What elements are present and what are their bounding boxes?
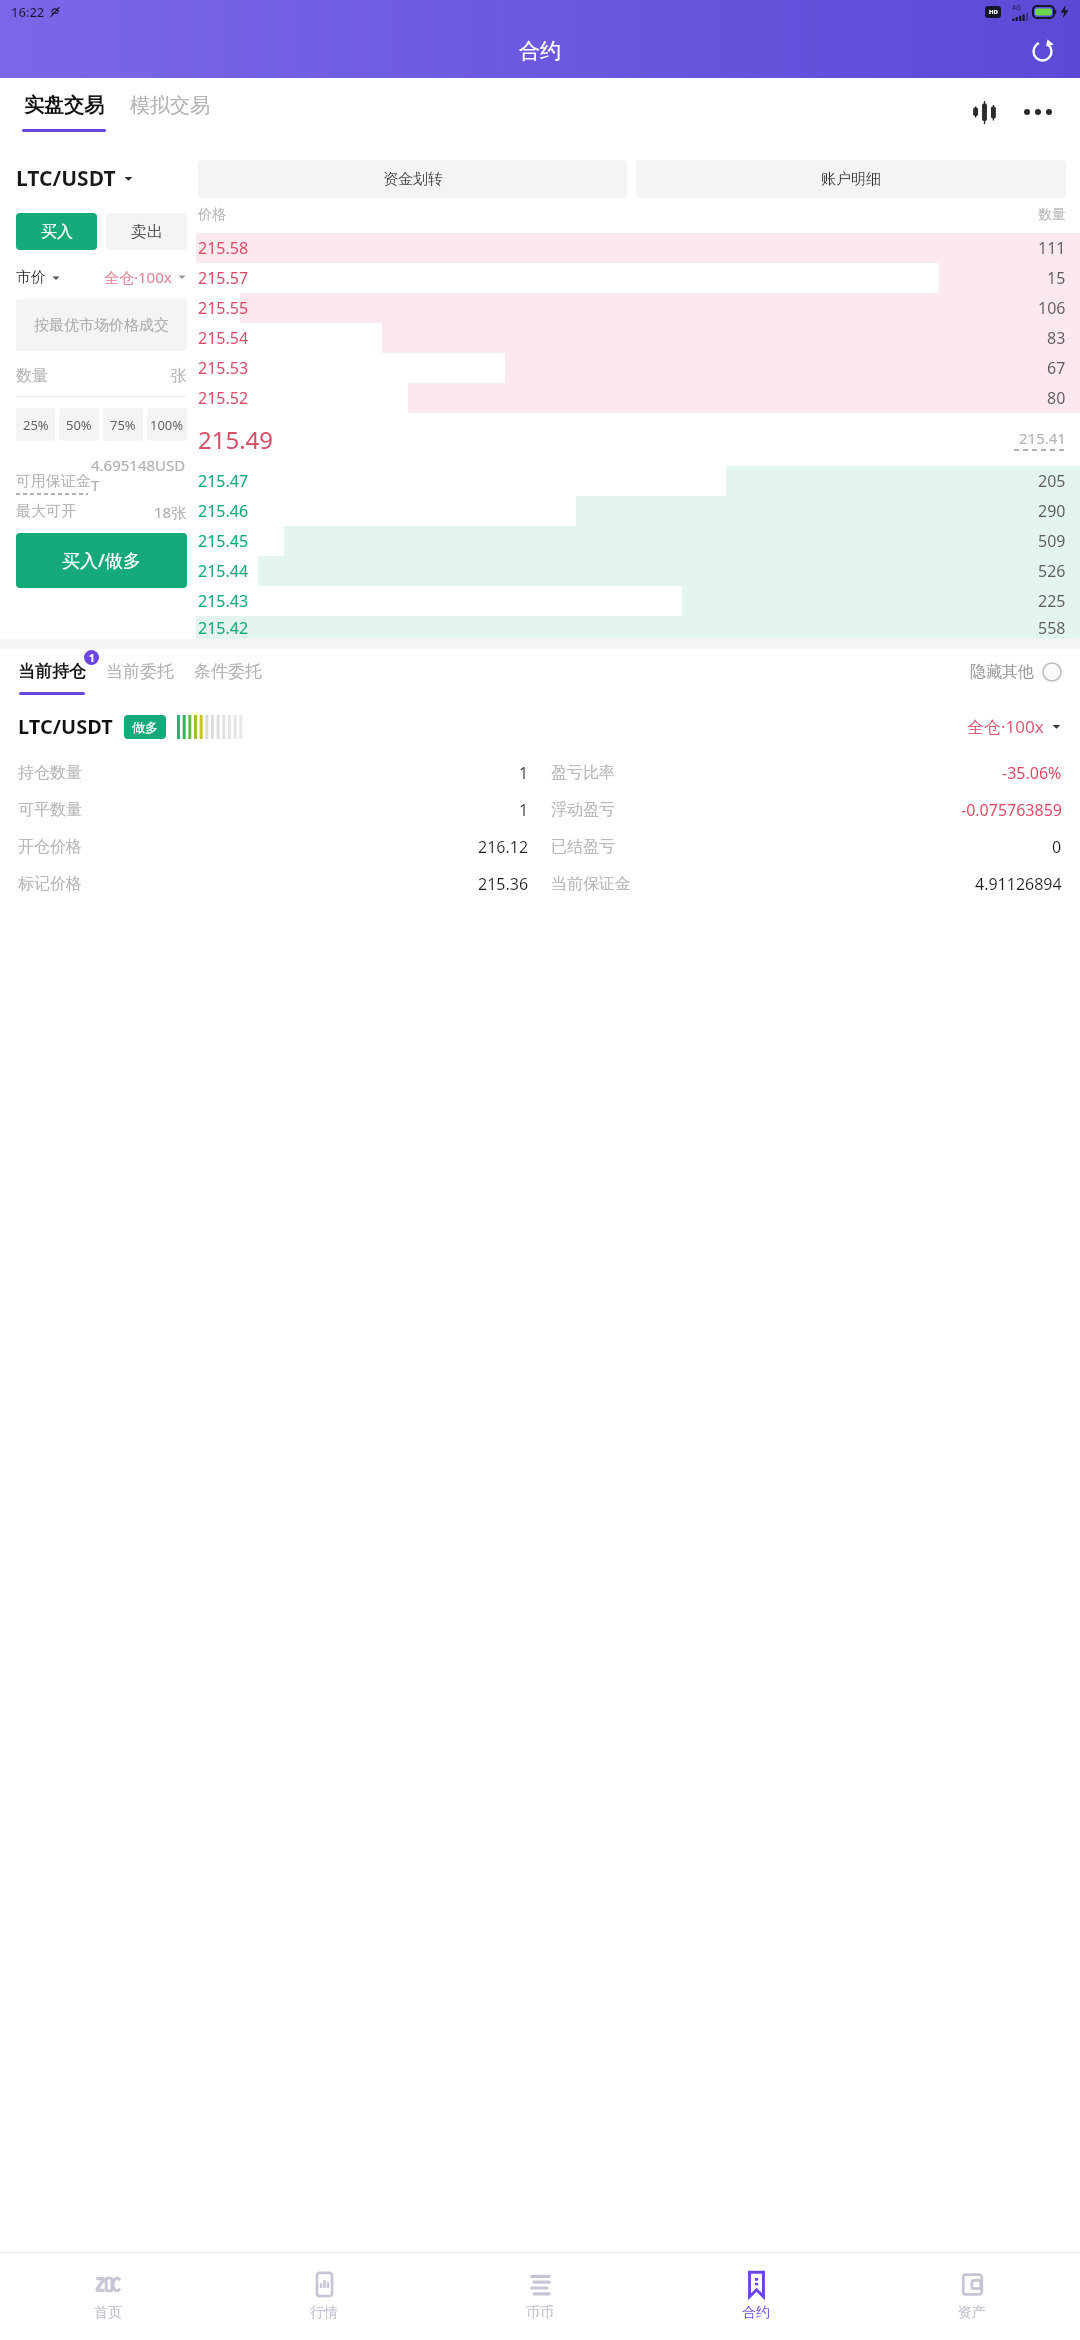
staticText: 215.42 [198,617,249,639]
button[interactable]: More options [1016,90,1060,134]
staticText: 1 [519,762,529,784]
staticText: 50% [66,416,92,434]
staticText: 合约 [519,38,561,64]
staticText: 市价 [16,268,46,287]
staticText: 资金划转 [383,170,443,189]
button[interactable]: 合约 [648,2252,864,2340]
button[interactable]: 资金划转 [198,160,627,198]
staticText: 模拟交易 [130,93,210,118]
staticText: 290 [1038,500,1066,522]
staticText: 75% [110,416,136,434]
button[interactable]: 模拟交易 [130,93,210,132]
staticText: 106 [1038,297,1066,319]
staticText: 4G [1012,3,1022,13]
staticText: 111 [1038,237,1066,259]
button[interactable]: 账户明细 [636,160,1066,198]
staticText: 16:22 [11,3,45,21]
button[interactable]: 数量 [16,366,187,386]
staticText: 558 [1038,617,1066,639]
staticText: 账户明细 [821,170,881,189]
button[interactable]: 215.46 [196,496,1080,526]
staticText: 行情 [310,2304,338,2322]
button[interactable]: 资产 [864,2252,1080,2340]
button[interactable]: 按最优市场价格成交 [16,299,187,351]
button[interactable]: 全仓·100x [967,715,1062,738]
staticText: 4.91126894 [975,873,1062,895]
button[interactable]: 215.47 [196,466,1080,496]
staticText: 全仓·100x [967,715,1044,738]
button[interactable]: 行情 [216,2252,432,2340]
staticText: 可平数量 [18,800,82,820]
staticText: 数量 [1038,206,1066,224]
staticText: 215.54 [198,327,249,349]
staticText: -35.06% [1002,762,1062,784]
staticText: 100% [150,416,184,434]
button[interactable]: 75% [103,408,143,441]
staticText: 隐藏其他 [970,662,1034,682]
button[interactable]: 50% [59,408,99,441]
staticText: 509 [1038,530,1066,552]
staticText: 做多 [132,719,158,735]
staticText: 实盘交易 [24,93,104,118]
staticText: 15 [1047,267,1066,289]
button[interactable]: Refresh [1022,31,1062,71]
staticText: 持仓数量 [18,763,82,783]
button[interactable]: 首页 [0,2252,216,2340]
button[interactable]: 买入/做多 [16,533,187,588]
staticText: 当前持仓 [18,661,86,682]
staticText: 215.43 [198,590,249,612]
staticText: 买入/做多 [62,548,141,573]
button[interactable]: 实盘交易 [22,93,106,132]
button[interactable]: 215.45 [196,526,1080,556]
staticText: 币币 [526,2304,554,2322]
button[interactable]: 25% [16,408,55,441]
staticText: 205 [1038,470,1066,492]
staticText: 83 [1047,327,1066,349]
staticText: 1 [519,799,529,821]
button[interactable]: 当前委托 [106,661,174,695]
staticText: 225 [1038,590,1066,612]
button[interactable]: 215.44 [196,556,1080,586]
button[interactable]: 215.57 [196,263,1080,293]
button[interactable]: 215.55 [196,293,1080,323]
button[interactable]: 市价 [16,268,61,287]
button[interactable]: 币币 [432,2252,648,2340]
staticText: 215.52 [198,387,249,409]
button[interactable]: 买入 [16,213,97,250]
button[interactable]: 隐藏其他 [970,662,1062,695]
staticText: 数量 [16,366,48,386]
button[interactable]: K-line chart [962,90,1006,134]
staticText: 80 [1047,387,1066,409]
button[interactable]: 215.52 [196,383,1080,413]
staticText: 全仓·100x [104,267,172,287]
staticText: HD [989,8,998,16]
button[interactable]: 当前持仓 [18,661,86,695]
button[interactable]: 全仓·100x [104,267,187,287]
staticText: 首页 [94,2304,122,2322]
button[interactable]: 条件委托 [194,661,262,695]
staticText: 卖出 [131,222,163,242]
staticText: 215.46 [198,500,249,522]
button[interactable]: 215.43 [196,586,1080,616]
staticText: 买入 [41,222,73,242]
staticText: 已结盈亏 [551,837,615,857]
staticText: 按最优市场价格成交 [34,316,169,335]
staticText: -0.075763859 [961,799,1062,821]
staticText: 215.53 [198,357,249,379]
staticText: 开仓价格 [18,837,82,857]
button[interactable]: 215.58 [196,233,1080,263]
staticText: 4.695148USDT [91,455,187,495]
button[interactable]: LTC/USDT [16,164,134,193]
button[interactable]: 卖出 [106,213,187,250]
button[interactable]: 215.53 [196,353,1080,383]
staticText: 1 [89,651,95,665]
staticText: 当前保证金 [551,874,631,894]
staticText: 最大可开 [16,502,76,521]
staticText: 合约 [742,2304,770,2322]
button[interactable]: 100% [147,408,187,441]
staticText: 215.44 [198,560,249,582]
staticText: 215.36 [478,873,529,895]
button[interactable]: 215.42 [196,616,1080,639]
staticText: 526 [1038,560,1066,582]
button[interactable]: 215.54 [196,323,1080,353]
